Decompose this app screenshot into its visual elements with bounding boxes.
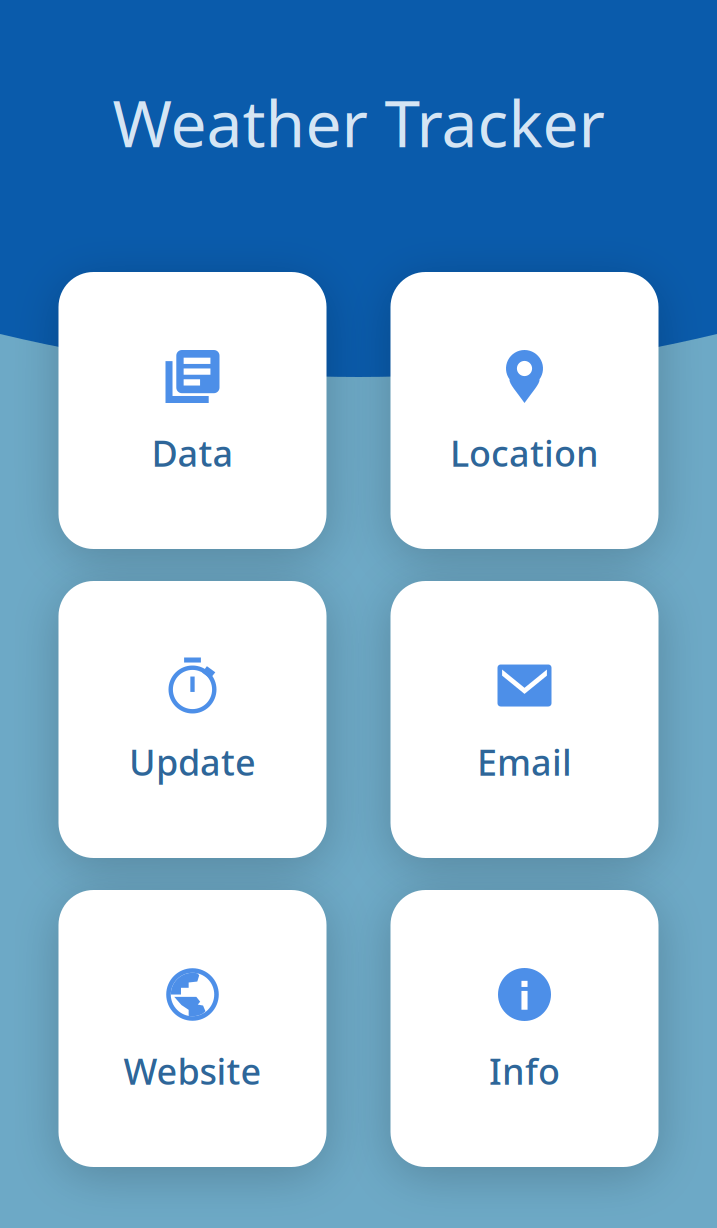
- button[interactable]: Email: [390, 581, 658, 858]
- staticText: Weather Tracker: [112, 80, 604, 165]
- staticText: Email: [477, 738, 572, 786]
- button[interactable]: Update: [58, 581, 326, 858]
- button[interactable]: Website: [58, 890, 326, 1167]
- staticText: Location: [450, 429, 599, 477]
- button[interactable]: Info: [390, 890, 658, 1167]
- button[interactable]: Location: [390, 272, 658, 549]
- staticText: Info: [489, 1047, 560, 1095]
- staticText: Data: [151, 429, 233, 477]
- staticText: Update: [129, 738, 256, 786]
- button[interactable]: Data: [58, 272, 326, 549]
- staticText: Website: [123, 1047, 261, 1095]
